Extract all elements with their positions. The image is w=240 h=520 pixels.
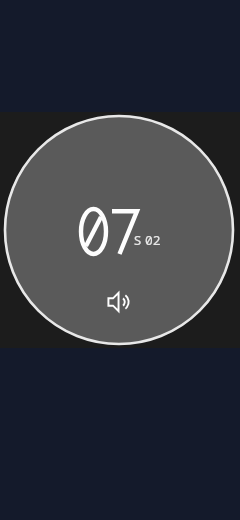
staticText: 02 [145, 231, 161, 249]
staticText: S [134, 231, 142, 249]
button[interactable]: Timer dial, 07 seconds 02, sound on [0, 0, 240, 520]
